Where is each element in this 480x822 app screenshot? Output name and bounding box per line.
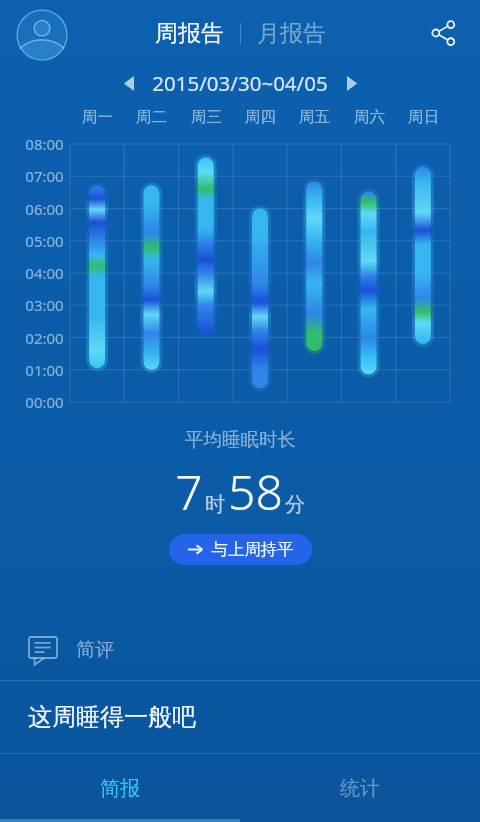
staticText: 简报	[100, 776, 140, 801]
staticText: 03:00	[25, 295, 64, 315]
staticText: 7	[175, 459, 203, 524]
staticText: 周六	[354, 107, 385, 127]
button[interactable]: Profile	[16, 9, 68, 61]
button[interactable]: 简报	[0, 754, 240, 822]
staticText: 分	[285, 492, 305, 517]
staticText: 平均睡眠时长	[185, 428, 296, 451]
staticText: 周五	[299, 107, 330, 127]
button[interactable]: 周报告	[149, 12, 230, 55]
staticText: 00:00	[25, 392, 64, 412]
staticText: 08:00	[25, 134, 64, 154]
button[interactable]: 简评	[0, 620, 480, 680]
staticText: 58	[228, 459, 283, 524]
staticText: 01:00	[25, 360, 64, 380]
button[interactable]: 这周睡得一般吧	[0, 681, 480, 753]
button[interactable]: 统计	[240, 754, 480, 822]
staticText: 与上周持平	[211, 539, 294, 560]
staticText: 06:00	[25, 199, 64, 219]
staticText: 07:00	[25, 166, 64, 186]
staticText: 简评	[76, 638, 114, 662]
button[interactable]: Next week	[334, 66, 368, 100]
staticText: 月报告	[257, 19, 326, 48]
staticText: 这周睡得一般吧	[28, 702, 196, 732]
staticText: 周报告	[155, 19, 224, 48]
button[interactable]: 与上周持平	[169, 534, 312, 565]
staticText: 04:00	[25, 263, 64, 283]
staticText: 周一	[82, 107, 113, 127]
staticText: 2015/03/30~04/05	[152, 69, 328, 97]
staticText: 周三	[191, 107, 222, 127]
button[interactable]: 月报告	[251, 12, 332, 55]
staticText: 周日	[408, 107, 439, 127]
staticText: 时	[205, 492, 225, 517]
staticText: 05:00	[25, 231, 64, 251]
button[interactable]: Share	[420, 10, 466, 56]
staticText: 02:00	[25, 328, 64, 348]
button[interactable]: Previous week	[112, 66, 146, 100]
staticText: 统计	[340, 776, 380, 801]
staticText: 周四	[245, 107, 276, 127]
staticText: 周二	[136, 107, 167, 127]
